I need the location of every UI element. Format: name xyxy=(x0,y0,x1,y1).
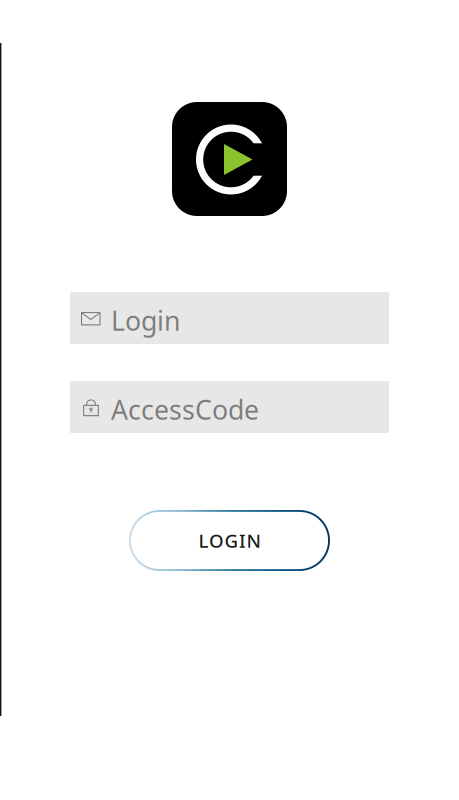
button[interactable]: LOGIN xyxy=(129,510,330,571)
staticText: Login xyxy=(111,303,180,338)
staticText: LOGIN xyxy=(198,528,260,553)
staticText: AccessCode xyxy=(111,392,259,427)
button[interactable]: Login xyxy=(70,292,389,344)
button[interactable]: AccessCode xyxy=(70,381,389,433)
